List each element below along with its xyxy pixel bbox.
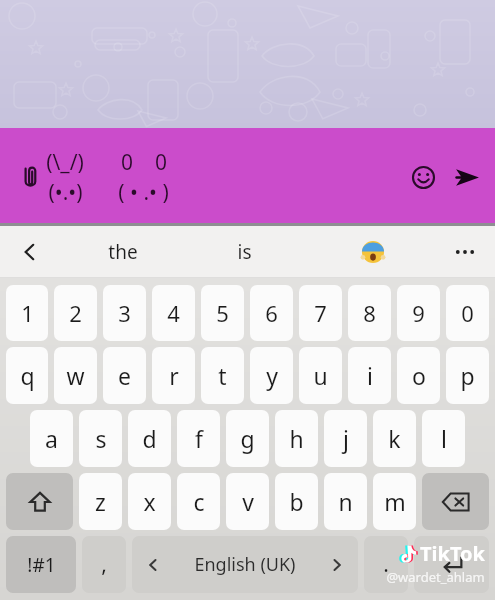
button[interactable]: e (103, 347, 146, 404)
button[interactable]: Emoji suggestion (356, 235, 390, 269)
staticText: u (313, 360, 328, 391)
button[interactable]: u (299, 347, 342, 404)
button[interactable]: 5 (201, 285, 244, 341)
staticText: 9 (412, 298, 425, 328)
staticText: y (266, 360, 278, 391)
button[interactable]: Back (12, 234, 48, 270)
button[interactable]: z (79, 473, 122, 530)
button[interactable]: 9 (397, 285, 440, 341)
staticText: k (388, 423, 401, 454)
button[interactable]: i (348, 347, 391, 404)
staticText: ( • .• ) (118, 178, 169, 207)
button[interactable]: p (446, 347, 489, 404)
button[interactable]: , (82, 536, 126, 593)
staticText: r (169, 360, 179, 391)
staticText: 0 0 (121, 148, 167, 177)
button[interactable]: . (364, 536, 408, 593)
staticText: . (383, 550, 389, 579)
button[interactable]: j (324, 410, 367, 467)
button[interactable]: r (152, 347, 195, 404)
staticText: 3 (118, 298, 131, 328)
staticText: b (289, 486, 304, 517)
button[interactable]: b (275, 473, 318, 530)
staticText: j (343, 423, 349, 454)
button[interactable]: Emoji (403, 157, 443, 197)
button[interactable]: 1 (6, 285, 48, 341)
staticText: w (66, 360, 85, 391)
staticText: 6 (265, 298, 278, 328)
button[interactable]: 6 (250, 285, 293, 341)
button[interactable]: 4 (152, 285, 195, 341)
button[interactable]: v (226, 473, 269, 530)
staticText: is (237, 239, 252, 265)
button[interactable]: o (397, 347, 440, 404)
staticText: !#1 (27, 552, 56, 578)
staticText: x (143, 486, 156, 517)
button[interactable]: f (177, 410, 220, 467)
staticText: @wardet_ahlam (386, 568, 485, 586)
button[interactable]: English (UK) (132, 536, 358, 593)
button[interactable]: a (30, 410, 73, 467)
button[interactable]: n (324, 473, 367, 530)
staticText: p (460, 360, 475, 391)
staticText: 8 (363, 298, 376, 328)
staticText: v (242, 486, 254, 517)
button[interactable]: t (201, 347, 244, 404)
staticText: 0 (461, 298, 474, 328)
button[interactable]: Enter (414, 536, 489, 593)
staticText: a (45, 423, 58, 454)
button[interactable]: Backspace (422, 473, 489, 530)
button[interactable]: !#1 (6, 536, 76, 593)
staticText: o (412, 360, 426, 391)
staticText: l (441, 423, 447, 454)
staticText: g (240, 423, 255, 454)
button[interactable]: y (250, 347, 293, 404)
staticText: 2 (69, 298, 82, 328)
button[interactable]: 7 (299, 285, 342, 341)
staticText: 4 (167, 298, 180, 328)
button[interactable]: 3 (103, 285, 146, 341)
staticText: s (95, 423, 107, 454)
button[interactable]: d (128, 410, 171, 467)
button[interactable]: is (237, 239, 252, 265)
staticText: d (142, 423, 157, 454)
button[interactable]: (\_/) (46, 148, 169, 207)
staticText: n (338, 486, 353, 517)
button[interactable]: More options (447, 234, 483, 270)
button[interactable]: 8 (348, 285, 391, 341)
button[interactable]: 2 (54, 285, 97, 341)
staticText: h (289, 423, 304, 454)
button[interactable]: k (373, 410, 416, 467)
button[interactable]: 0 (446, 285, 489, 341)
staticText: t (218, 360, 227, 391)
button[interactable]: m (373, 473, 416, 530)
button[interactable]: Send (445, 155, 489, 199)
staticText: , (101, 550, 107, 579)
staticText: 1 (21, 298, 34, 328)
button[interactable]: q (6, 347, 48, 404)
staticText: (•.•) (48, 178, 83, 207)
button[interactable]: g (226, 410, 269, 467)
button[interactable]: Attach (10, 157, 50, 197)
staticText: the (108, 239, 138, 265)
staticText: (\_/) (46, 148, 84, 177)
staticText: English (UK) (194, 552, 296, 577)
button[interactable]: l (422, 410, 465, 467)
button[interactable]: c (177, 473, 220, 530)
staticText: 5 (216, 298, 229, 328)
staticText: i (367, 360, 373, 391)
button[interactable]: h (275, 410, 318, 467)
button[interactable]: the (108, 239, 138, 265)
staticText: 7 (314, 298, 327, 328)
staticText: e (118, 360, 131, 391)
button[interactable]: Shift (6, 473, 73, 530)
staticText: m (384, 486, 406, 517)
staticText: TikTok (420, 540, 485, 567)
staticText: c (193, 486, 205, 517)
staticText: q (20, 360, 35, 391)
staticText: z (95, 486, 106, 517)
staticText: f (195, 423, 203, 454)
button[interactable]: s (79, 410, 122, 467)
button[interactable]: w (54, 347, 97, 404)
button[interactable]: x (128, 473, 171, 530)
